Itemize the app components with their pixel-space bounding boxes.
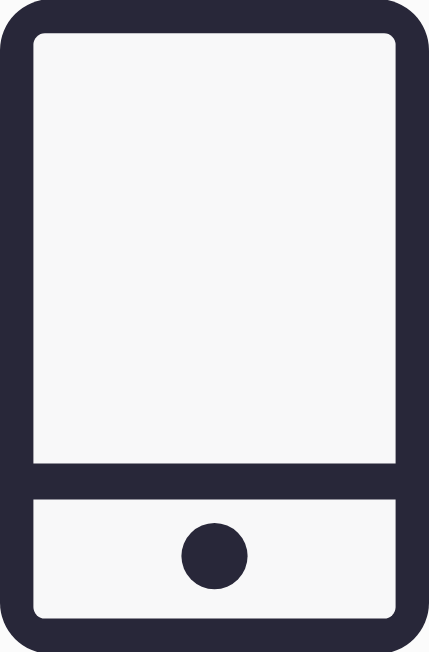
button[interactable]: Home button xyxy=(181,523,247,589)
button[interactable]: Device screen xyxy=(33,33,395,463)
